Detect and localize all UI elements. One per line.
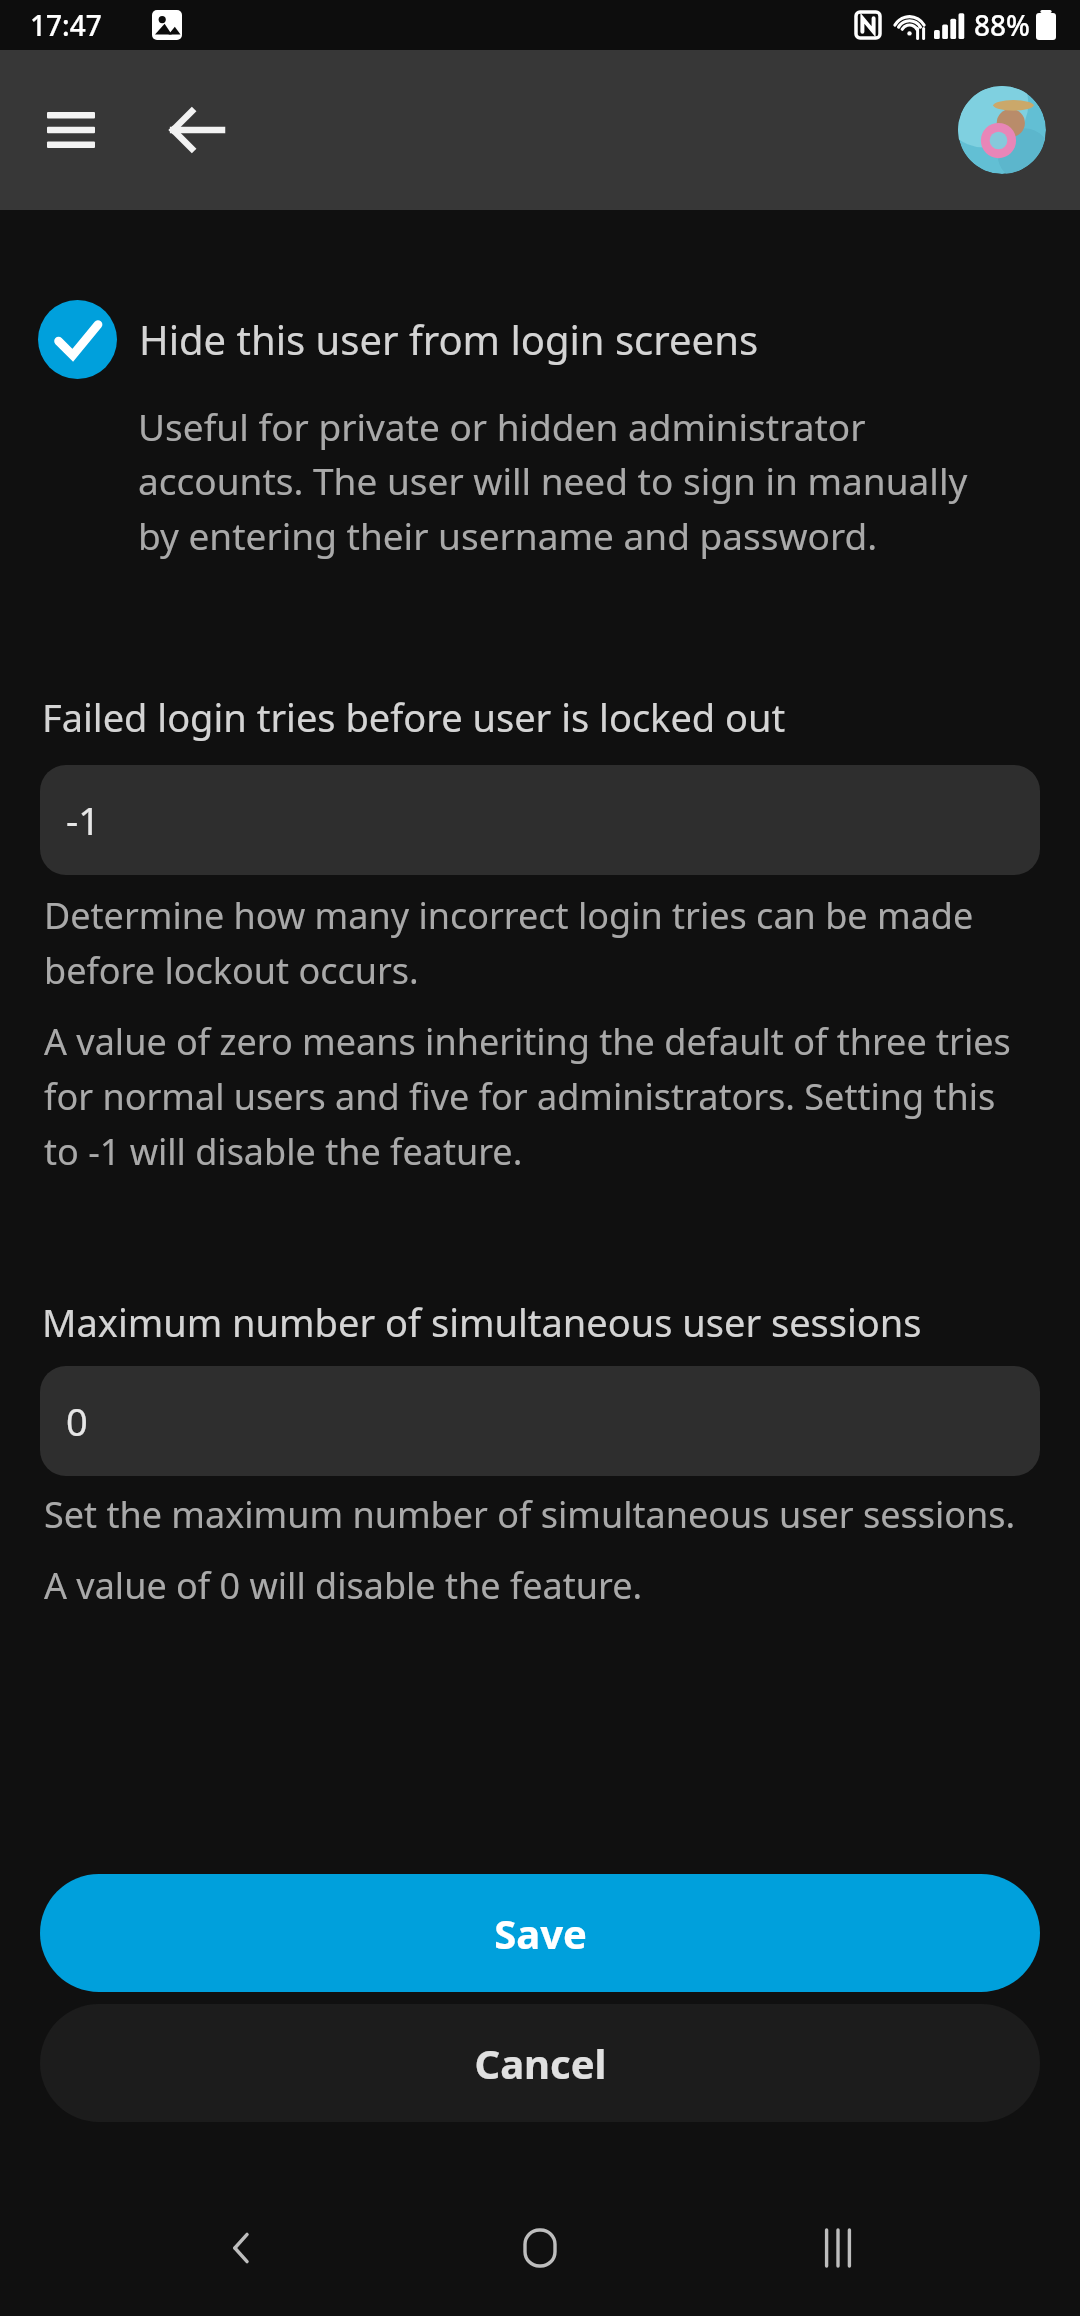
- staticText: Determine how many incorrect login tries…: [44, 891, 1022, 995]
- button[interactable]: Back: [148, 82, 244, 178]
- button[interactable]: Save: [40, 1874, 1040, 1992]
- staticText: Failed login tries before user is locked…: [42, 691, 786, 743]
- button[interactable]: -1: [40, 765, 1040, 875]
- staticText: 0: [66, 1395, 88, 1447]
- staticText: Useful for private or hidden administrat…: [138, 401, 980, 561]
- button[interactable]: 0: [40, 1366, 1040, 1476]
- button[interactable]: Hide this user from login screens: [0, 300, 1080, 379]
- button[interactable]: Account: [958, 86, 1046, 174]
- staticText: Maximum number of simultaneous user sess…: [42, 1296, 922, 1348]
- staticText: Cancel: [474, 2036, 607, 2090]
- staticText: Hide this user from login screens: [139, 312, 759, 366]
- staticText: Set the maximum number of simultaneous u…: [44, 1490, 1022, 1539]
- staticText: A value of 0 will disable the feature.: [44, 1561, 643, 1610]
- button[interactable]: Back: [188, 2193, 298, 2303]
- staticText: Save: [494, 1906, 587, 1960]
- button[interactable]: Recents: [783, 2193, 893, 2303]
- staticText: A value of zero means inheriting the def…: [44, 1017, 1022, 1176]
- button[interactable]: Cancel: [40, 2004, 1040, 2122]
- staticText: 88%: [974, 6, 1030, 44]
- button[interactable]: Home: [485, 2193, 595, 2303]
- staticText: -1: [66, 794, 100, 846]
- staticText: 17:47: [30, 6, 102, 44]
- button[interactable]: Menu: [26, 85, 116, 175]
